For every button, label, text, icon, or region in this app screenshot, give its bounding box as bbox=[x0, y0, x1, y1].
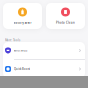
button[interactable]: Photo Clean bbox=[46, 3, 85, 29]
staticText: Quick Boost bbox=[14, 67, 30, 71]
button[interactable]: Anti-virus bbox=[3, 42, 85, 60]
staticText: Anti-virus bbox=[14, 49, 27, 52]
button[interactable]: Battery Saver bbox=[3, 3, 42, 29]
button[interactable]: Quick Boost bbox=[3, 60, 85, 78]
staticText: More Tools bbox=[5, 38, 20, 42]
staticText: Photo Clean bbox=[56, 21, 75, 24]
staticText: Battery Saver bbox=[13, 21, 31, 24]
